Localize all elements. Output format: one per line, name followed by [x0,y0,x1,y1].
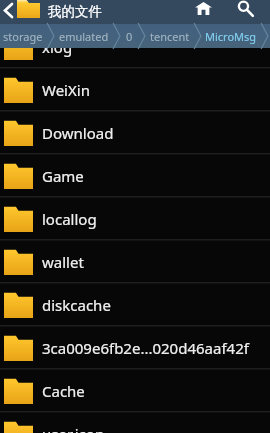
staticText: xlog [42,37,73,57]
button[interactable]: MicroMsg [205,29,257,44]
staticText: diskcache [42,295,111,315]
staticText: WeiXin [42,80,90,100]
button[interactable]: user.icon [0,413,270,433]
staticText: 我的文件 [48,3,102,20]
staticText: Download [42,123,114,143]
button[interactable]: 0 [126,29,133,44]
staticText: wallet [42,252,84,272]
staticText: tencent [150,29,190,44]
button[interactable]: storage [3,29,43,44]
button[interactable]: Cache [0,370,270,413]
button[interactable]: WeiXin [0,69,270,112]
button[interactable]: wallet [0,241,270,284]
button[interactable]: Back [0,0,16,24]
staticText: locallog [42,209,97,229]
staticText: emulated [59,29,109,44]
staticText: 3ca009e6fb2e...020d46aaf42f [42,338,249,358]
button[interactable]: tencent [150,29,190,44]
staticText: user.icon [42,424,105,433]
staticText: Cache [42,381,85,401]
button[interactable]: Search [230,0,262,24]
staticText: 0 [126,29,133,44]
staticText: Game [42,166,84,186]
button[interactable]: emulated [59,29,109,44]
staticText: MicroMsg [205,29,257,44]
button[interactable]: locallog [0,198,270,241]
button[interactable]: Home [187,0,219,24]
button[interactable]: diskcache [0,284,270,327]
button[interactable]: xlog [0,26,270,69]
button[interactable]: Game [0,155,270,198]
staticText: storage [3,29,43,44]
button[interactable]: Download [0,112,270,155]
button[interactable]: 3ca009e6fb2e...020d46aaf42f [0,327,270,370]
